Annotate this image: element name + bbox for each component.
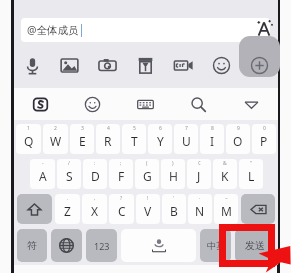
staticText: 7 <box>185 125 188 132</box>
staticText: ¢ <box>198 160 201 167</box>
staticText: Y <box>157 133 164 149</box>
staticText: . <box>67 195 69 202</box>
button[interactable]: ! <box>136 194 160 224</box>
staticText: / <box>68 160 70 167</box>
staticText: 9 <box>237 125 240 132</box>
button[interactable]: 符 <box>17 229 47 262</box>
staticText: A <box>39 168 47 184</box>
staticText: & <box>223 160 227 167</box>
button[interactable]: AI text <box>252 16 276 40</box>
staticText: , <box>94 195 96 202</box>
button[interactable]: : <box>83 159 107 189</box>
staticText: 3 <box>81 125 84 132</box>
staticText: ; <box>120 160 122 167</box>
staticText: 4 <box>107 125 110 132</box>
staticText: E <box>79 133 86 149</box>
staticText: @全体成员 <box>27 23 79 37</box>
button[interactable]: 3 <box>70 124 94 154</box>
button[interactable]: 6 <box>148 124 172 154</box>
button[interactable]: Language <box>51 229 82 262</box>
button[interactable]: ( <box>135 159 159 189</box>
button[interactable]: Emoji <box>66 88 119 120</box>
staticText: 6 <box>159 125 162 132</box>
staticText: ? <box>120 195 123 202</box>
button[interactable]: & <box>213 159 237 189</box>
staticText: U <box>182 133 191 149</box>
staticText: ) <box>172 160 174 167</box>
staticText: N <box>195 203 205 219</box>
button[interactable]: Voice <box>14 48 51 82</box>
staticText: 2 <box>54 125 57 132</box>
button[interactable]: Backspace <box>241 194 275 224</box>
button[interactable]: ? <box>109 194 134 224</box>
button[interactable]: ~ <box>214 194 238 224</box>
staticText: - <box>42 160 44 167</box>
button[interactable]: " <box>239 159 263 189</box>
staticText: Z <box>64 203 71 219</box>
button[interactable]: More <box>240 48 278 82</box>
button[interactable]: Camera <box>88 48 126 82</box>
button[interactable]: / <box>57 159 81 189</box>
button[interactable]: Sogou <box>14 88 66 120</box>
button[interactable]: Photo <box>51 48 88 82</box>
button[interactable]: · <box>188 194 212 224</box>
button[interactable]: 4 <box>96 124 120 154</box>
button[interactable]: Collapse keyboard <box>225 88 278 120</box>
button[interactable]: 5 <box>122 124 146 154</box>
button[interactable]: Emoji <box>202 48 240 82</box>
staticText: H <box>169 168 178 184</box>
staticText: 发送 <box>245 239 265 252</box>
staticText: : <box>94 160 96 167</box>
button[interactable]: 123 <box>86 229 117 262</box>
staticText: B <box>170 203 178 219</box>
staticText: 5 <box>133 125 136 132</box>
staticText: V <box>144 203 152 219</box>
button[interactable]: . <box>55 194 80 224</box>
staticText: " <box>250 160 253 167</box>
button[interactable]: 中英 <box>200 229 231 262</box>
staticText: K <box>221 168 229 184</box>
staticText: 中英 <box>207 240 225 251</box>
staticText: M <box>221 203 232 219</box>
staticText: G <box>143 168 152 184</box>
staticText: P <box>260 133 268 149</box>
button[interactable]: 2 <box>43 124 68 154</box>
button[interactable]: 8 <box>200 124 224 154</box>
staticText: C <box>118 203 126 219</box>
staticText: 8 <box>211 125 214 132</box>
button[interactable]: Red packet <box>126 48 164 82</box>
button[interactable]: @全体成员 <box>21 18 270 42</box>
button[interactable]: - <box>30 159 55 189</box>
staticText: D <box>91 168 100 184</box>
button[interactable]: ) <box>161 159 185 189</box>
staticText: I <box>210 133 215 149</box>
button[interactable]: ' <box>162 194 186 224</box>
button[interactable]: Shift <box>17 194 52 224</box>
button[interactable]: 1 <box>16 124 41 154</box>
button[interactable]: Search <box>172 88 225 120</box>
button[interactable]: , <box>82 194 107 224</box>
button[interactable]: 发送 <box>235 229 275 262</box>
button[interactable]: Keyboard layout <box>119 88 172 120</box>
staticText: 1 <box>27 125 30 132</box>
staticText: X <box>91 203 99 219</box>
staticText: O <box>233 133 243 149</box>
staticText: W <box>50 133 62 149</box>
staticText: S <box>66 168 73 184</box>
button[interactable]: GIF <box>164 48 202 82</box>
button[interactable]: 9 <box>226 124 250 154</box>
staticText: ( <box>146 160 148 167</box>
staticText: R <box>104 133 112 149</box>
staticText: ! <box>147 195 149 202</box>
button[interactable]: Space <box>121 229 196 262</box>
staticText: F <box>118 168 125 184</box>
staticText: Q <box>24 133 34 149</box>
staticText: 123 <box>94 240 110 252</box>
button[interactable]: 0 <box>252 124 276 154</box>
staticText: ' <box>173 195 175 202</box>
staticText: L <box>248 168 255 184</box>
button[interactable]: 7 <box>174 124 198 154</box>
staticText: ~ <box>225 195 228 202</box>
button[interactable]: ¢ <box>187 159 211 189</box>
button[interactable]: ; <box>109 159 133 189</box>
